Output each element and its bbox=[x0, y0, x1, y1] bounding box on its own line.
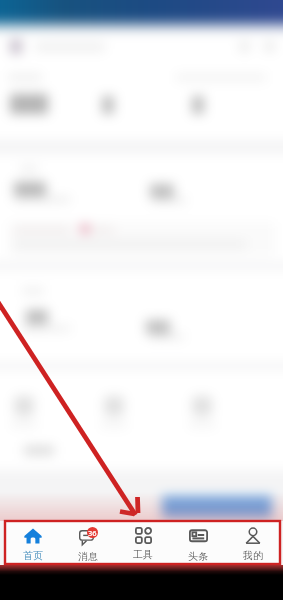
staticText: 头条 bbox=[188, 550, 208, 563]
staticText: 首页 bbox=[23, 549, 43, 562]
button[interactable]: 36 bbox=[66, 521, 110, 563]
button[interactable]: 工具 bbox=[121, 521, 165, 561]
staticText: 工具 bbox=[133, 548, 153, 561]
button[interactable]: 首页 bbox=[11, 521, 55, 562]
staticText: 我的 bbox=[243, 549, 263, 562]
staticText: 消息 bbox=[78, 550, 98, 563]
button[interactable]: 我的 bbox=[231, 521, 275, 562]
staticText: 36 bbox=[88, 528, 97, 538]
button[interactable]: 头条 bbox=[176, 521, 220, 563]
